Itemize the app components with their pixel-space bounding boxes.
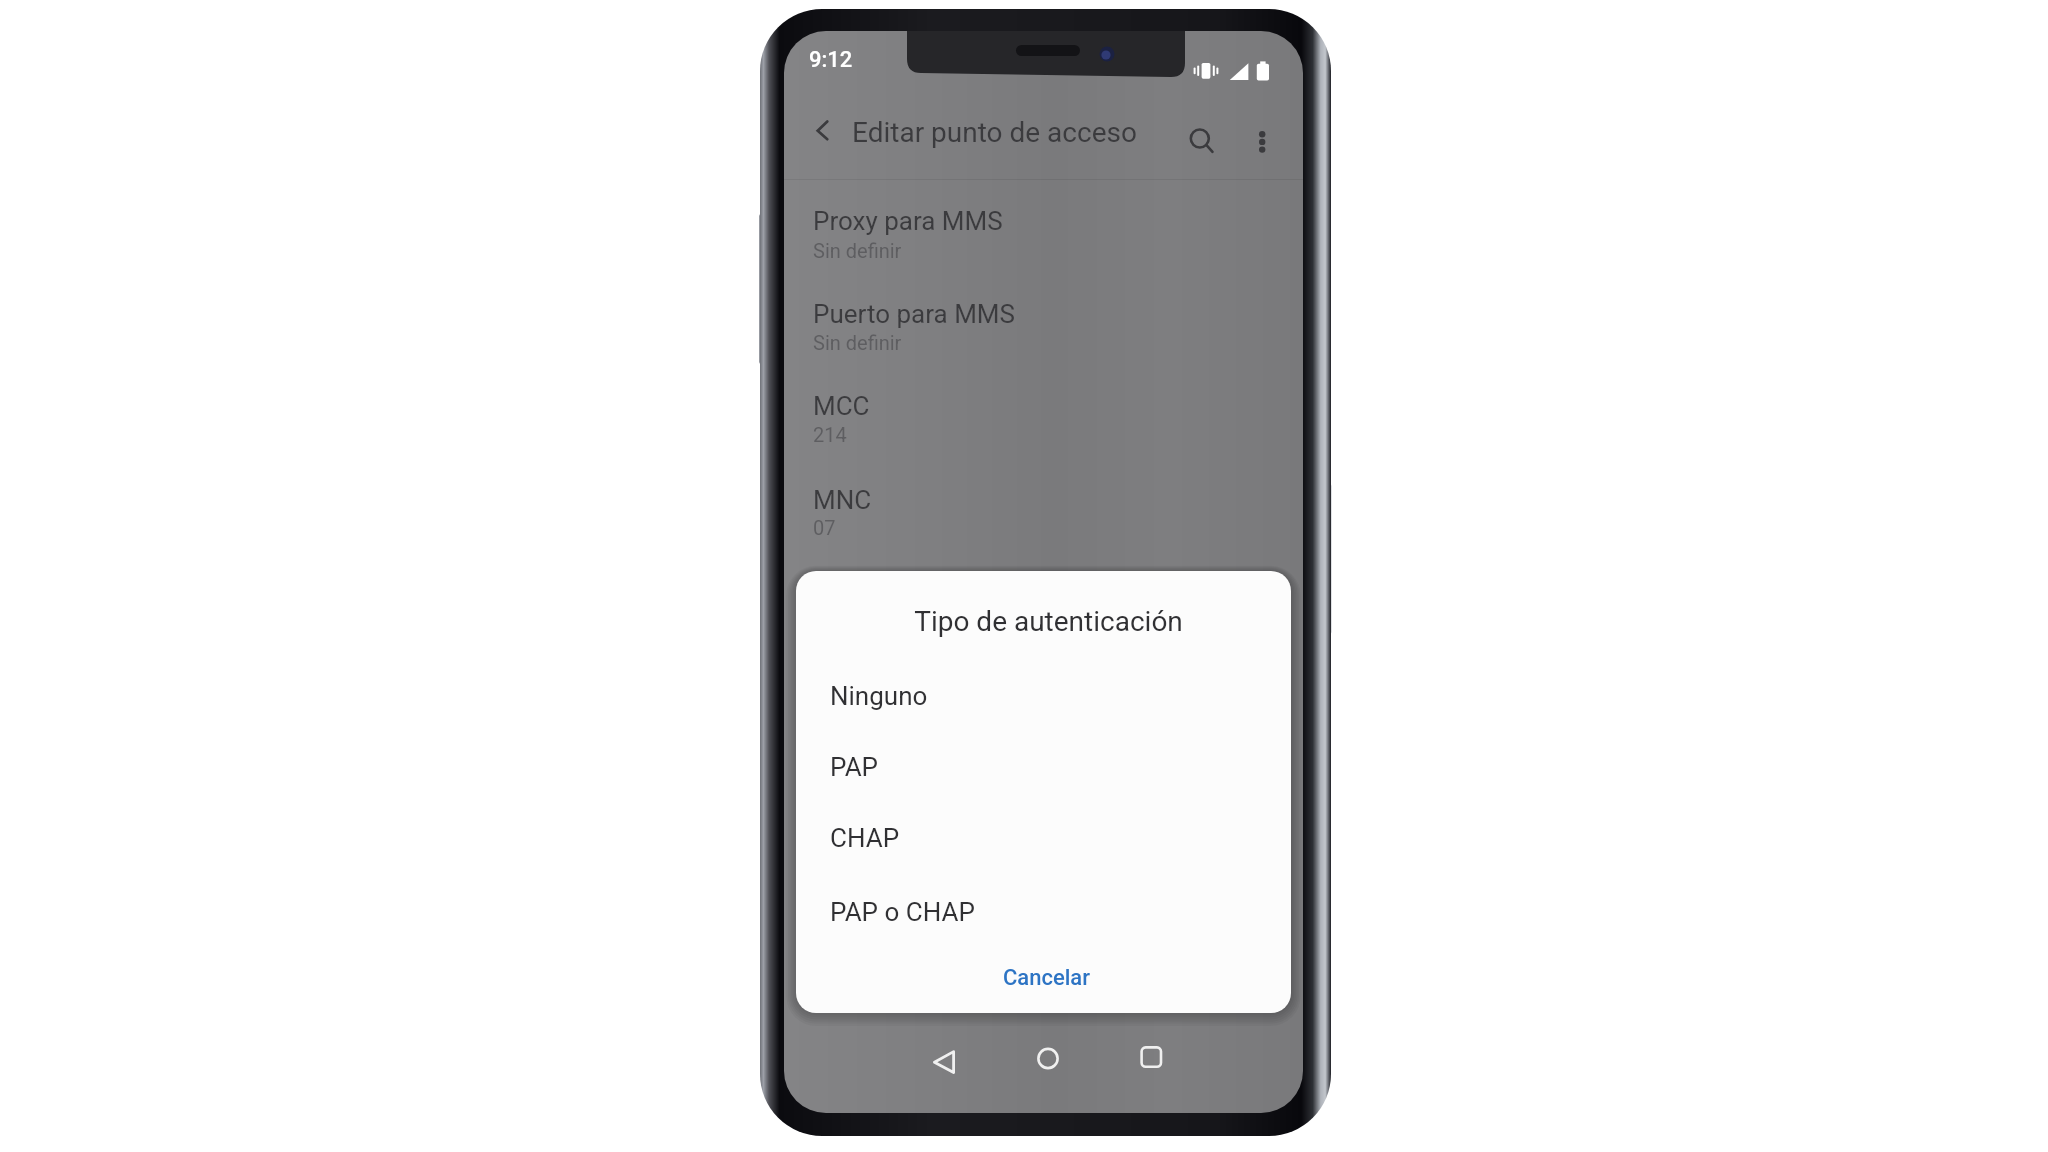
button[interactable]: PAP bbox=[796, 736, 1291, 798]
staticText: PAP bbox=[830, 752, 879, 782]
staticText: 9:12 bbox=[809, 47, 853, 73]
staticText: MCC bbox=[813, 391, 870, 421]
button[interactable]: Puerto para MMS bbox=[784, 283, 1303, 367]
staticText: 214 bbox=[813, 423, 847, 446]
staticText: PAP o CHAP bbox=[830, 897, 975, 927]
button[interactable]: Back bbox=[789, 100, 851, 162]
button[interactable]: Cancelar bbox=[981, 955, 1112, 1001]
button[interactable]: Home bbox=[1014, 1028, 1078, 1092]
staticText: Sin definir bbox=[813, 239, 902, 262]
staticText: Cancelar bbox=[1003, 965, 1090, 991]
staticText: Ninguno bbox=[830, 681, 928, 711]
button[interactable]: More options bbox=[1231, 108, 1293, 170]
staticText: Puerto para MMS bbox=[813, 299, 1015, 329]
button[interactable]: PAP o CHAP bbox=[796, 881, 1291, 943]
button[interactable]: CHAP bbox=[796, 807, 1291, 869]
button[interactable]: Back bbox=[910, 1028, 974, 1092]
button[interactable]: MNC bbox=[784, 469, 1303, 553]
button[interactable]: Search bbox=[1169, 108, 1231, 170]
button[interactable]: Ninguno bbox=[796, 665, 1291, 727]
button[interactable]: Proxy para MMS bbox=[784, 190, 1303, 274]
staticText: MNC bbox=[813, 485, 872, 515]
staticText: Editar punto de acceso bbox=[852, 116, 1137, 149]
button[interactable]: Recent apps bbox=[1118, 1028, 1182, 1092]
button[interactable]: MCC bbox=[784, 375, 1303, 459]
staticText: Proxy para MMS bbox=[813, 206, 1003, 236]
staticText: 07 bbox=[813, 516, 836, 539]
staticText: Tipo de autenticación bbox=[801, 605, 1291, 638]
staticText: CHAP bbox=[830, 823, 900, 853]
staticText: Sin definir bbox=[813, 331, 902, 354]
